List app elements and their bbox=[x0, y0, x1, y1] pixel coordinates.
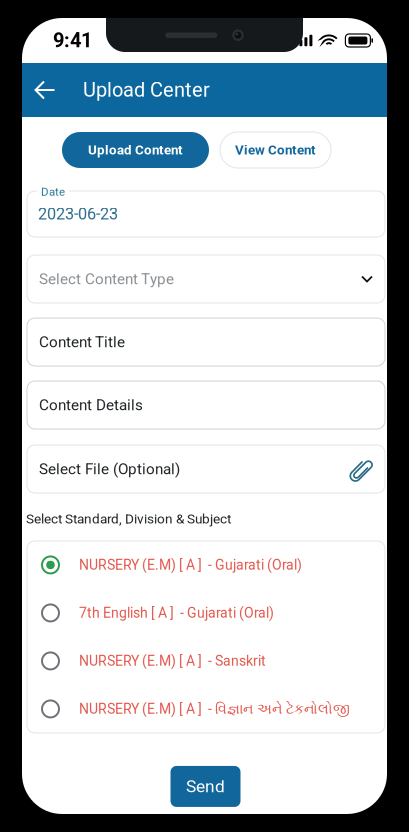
staticText: 9:41 bbox=[53, 29, 92, 52]
staticText: Content Details bbox=[39, 396, 143, 414]
staticText: Date bbox=[41, 185, 65, 198]
staticText: Upload Center bbox=[83, 78, 210, 102]
staticText: View Content bbox=[235, 142, 316, 158]
staticText: NURSERY (E.M) [ A ] - Gujarati (Oral) bbox=[79, 557, 302, 573]
button[interactable]: View Content bbox=[220, 132, 331, 168]
staticText: 2023-06-23 bbox=[38, 204, 118, 224]
staticText: Upload Content bbox=[88, 142, 183, 158]
button[interactable]: Select File (Optional) bbox=[27, 445, 385, 493]
button[interactable]: NURSERY (E.M) [ A ] - Sanskrit bbox=[27, 637, 385, 685]
staticText: Select Standard, Division & Subject bbox=[26, 511, 231, 527]
button[interactable]: Upload Content bbox=[62, 132, 209, 168]
staticText: Send bbox=[186, 776, 225, 797]
button[interactable]: Content Title bbox=[27, 318, 385, 366]
staticText: 7th English [ A ] - Gujarati (Oral) bbox=[79, 605, 274, 621]
staticText: Select File (Optional) bbox=[39, 460, 180, 478]
staticText: Select Content Type bbox=[39, 270, 174, 288]
button[interactable]: 7th English [ A ] - Gujarati (Oral) bbox=[27, 589, 385, 637]
staticText: NURSERY (E.M) [ A ] - વિજ્ઞાન અને ટેકનોલ… bbox=[79, 701, 350, 717]
button[interactable]: Select Content Type bbox=[27, 255, 385, 303]
button[interactable]: Send bbox=[170, 766, 240, 807]
staticText: Content Title bbox=[39, 333, 125, 351]
staticText: NURSERY (E.M) [ A ] - Sanskrit bbox=[79, 653, 266, 669]
button[interactable]: NURSERY (E.M) [ A ] - વિજ્ઞાન અને ટેકનોલ… bbox=[27, 685, 385, 733]
button[interactable]: NURSERY (E.M) [ A ] - Gujarati (Oral) bbox=[27, 541, 385, 589]
button[interactable]: Content Details bbox=[27, 381, 385, 429]
button[interactable]: Back bbox=[23, 63, 67, 117]
